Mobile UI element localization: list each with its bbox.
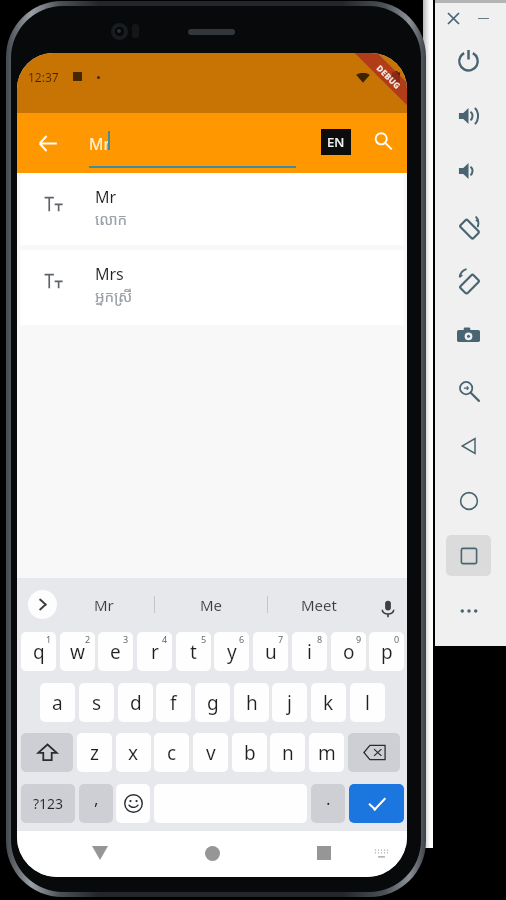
button[interactable]: j bbox=[272, 683, 307, 722]
staticText: 3 bbox=[123, 633, 129, 645]
button[interactable]: p bbox=[369, 632, 404, 671]
button[interactable]: x bbox=[116, 733, 151, 772]
staticText: 8 bbox=[317, 633, 323, 645]
staticText: q bbox=[33, 639, 45, 665]
staticText: DEBUG bbox=[375, 62, 404, 91]
staticText: Mr bbox=[95, 186, 117, 208]
button[interactable]: Rotate right bbox=[446, 260, 491, 301]
button[interactable]: Overview bbox=[446, 535, 491, 576]
button[interactable]: Switch keyboard bbox=[361, 833, 401, 873]
button[interactable]: a bbox=[40, 683, 75, 722]
staticText: i bbox=[307, 639, 312, 665]
button[interactable]: Power bbox=[446, 40, 491, 81]
staticText: Mrs bbox=[95, 263, 124, 285]
staticText: r bbox=[151, 639, 159, 665]
staticText: លោក bbox=[95, 209, 128, 229]
button[interactable]: b bbox=[232, 733, 267, 772]
button[interactable]: w bbox=[60, 632, 95, 671]
button[interactable]: g bbox=[195, 683, 230, 722]
staticText: 12:37 bbox=[28, 69, 59, 85]
button[interactable]: c bbox=[154, 733, 189, 772]
staticText: 9 bbox=[356, 633, 362, 645]
staticText: 4 bbox=[162, 633, 168, 645]
staticText: w bbox=[70, 639, 85, 665]
button[interactable]: Shift bbox=[21, 733, 73, 772]
button[interactable]: Meet bbox=[281, 578, 357, 631]
staticText: Mr bbox=[89, 133, 111, 155]
staticText: 0 bbox=[394, 633, 400, 645]
button[interactable]: Back bbox=[80, 833, 120, 873]
staticText: Meet bbox=[301, 595, 337, 615]
staticText: h bbox=[246, 690, 258, 716]
button[interactable]: d bbox=[118, 683, 153, 722]
button[interactable]: Me bbox=[175, 578, 247, 631]
button[interactable]: s bbox=[79, 683, 114, 722]
button[interactable]: k bbox=[311, 683, 346, 722]
button[interactable]: Minimize bbox=[470, 5, 496, 31]
button[interactable]: Volume down bbox=[446, 150, 491, 191]
button[interactable]: Emoji bbox=[116, 784, 150, 823]
staticText: x bbox=[128, 740, 139, 766]
staticText: e bbox=[110, 639, 121, 665]
button[interactable]: m bbox=[309, 733, 344, 772]
button[interactable]: Back bbox=[446, 425, 491, 466]
staticText: j bbox=[287, 690, 292, 716]
staticText: y bbox=[227, 639, 237, 665]
button[interactable]: Close bbox=[440, 5, 466, 31]
button[interactable]: h bbox=[234, 683, 269, 722]
button[interactable]: More bbox=[446, 590, 491, 631]
button[interactable]: f bbox=[156, 683, 191, 722]
button[interactable]: q bbox=[21, 632, 56, 671]
button[interactable]: Search bbox=[361, 119, 405, 163]
button[interactable]: l bbox=[350, 683, 385, 722]
staticText: 2 bbox=[85, 633, 91, 645]
button[interactable]: Volume up bbox=[446, 95, 491, 136]
staticText: 1 bbox=[46, 633, 52, 645]
button[interactable]: Mr bbox=[68, 578, 140, 631]
button[interactable]: r bbox=[137, 632, 172, 671]
button[interactable]: Enter bbox=[349, 784, 404, 823]
button[interactable]: n bbox=[270, 733, 305, 772]
button[interactable]: t bbox=[176, 632, 211, 671]
staticText: l bbox=[365, 690, 370, 716]
button[interactable]: z bbox=[77, 733, 112, 772]
button[interactable]: Rotate left bbox=[446, 205, 491, 246]
staticText: Me bbox=[200, 595, 223, 615]
staticText: v bbox=[206, 740, 216, 766]
button[interactable]: Back bbox=[26, 121, 70, 165]
button[interactable]: v bbox=[193, 733, 228, 772]
button[interactable]: , bbox=[79, 784, 113, 823]
button[interactable]: Mr bbox=[89, 117, 313, 173]
staticText: b bbox=[244, 740, 256, 766]
button[interactable]: Zoom bbox=[446, 370, 491, 411]
button[interactable]: Voice input bbox=[371, 592, 404, 625]
button[interactable]: Mrs bbox=[20, 250, 404, 325]
staticText: p bbox=[381, 639, 393, 665]
button[interactable]: i bbox=[292, 632, 327, 671]
staticText: o bbox=[343, 639, 355, 665]
staticText: u bbox=[265, 639, 277, 665]
button[interactable]: o bbox=[331, 632, 366, 671]
button[interactable]: Expand suggestions bbox=[28, 590, 57, 619]
staticText: 6 bbox=[239, 633, 245, 645]
staticText: z bbox=[90, 740, 99, 766]
button[interactable]: ?123 bbox=[21, 784, 75, 823]
button[interactable]: Home bbox=[192, 833, 232, 873]
button[interactable]: Backspace bbox=[348, 733, 400, 772]
button[interactable]: y bbox=[214, 632, 249, 671]
staticText: a bbox=[52, 690, 63, 716]
staticText: d bbox=[130, 690, 142, 716]
button[interactable]: Home bbox=[446, 480, 491, 521]
staticText: ?123 bbox=[33, 794, 64, 813]
button[interactable]: . bbox=[311, 784, 345, 823]
button[interactable]: EN bbox=[321, 129, 351, 155]
button[interactable]: Screenshot bbox=[446, 315, 491, 356]
button[interactable]: Mr bbox=[20, 173, 404, 245]
button[interactable]: u bbox=[253, 632, 288, 671]
staticText: អ្នកស្រី bbox=[95, 286, 133, 306]
button[interactable]: Recent apps bbox=[304, 833, 344, 873]
button[interactable]: e bbox=[98, 632, 133, 671]
staticText: . bbox=[326, 787, 331, 810]
staticText: g bbox=[207, 690, 219, 716]
